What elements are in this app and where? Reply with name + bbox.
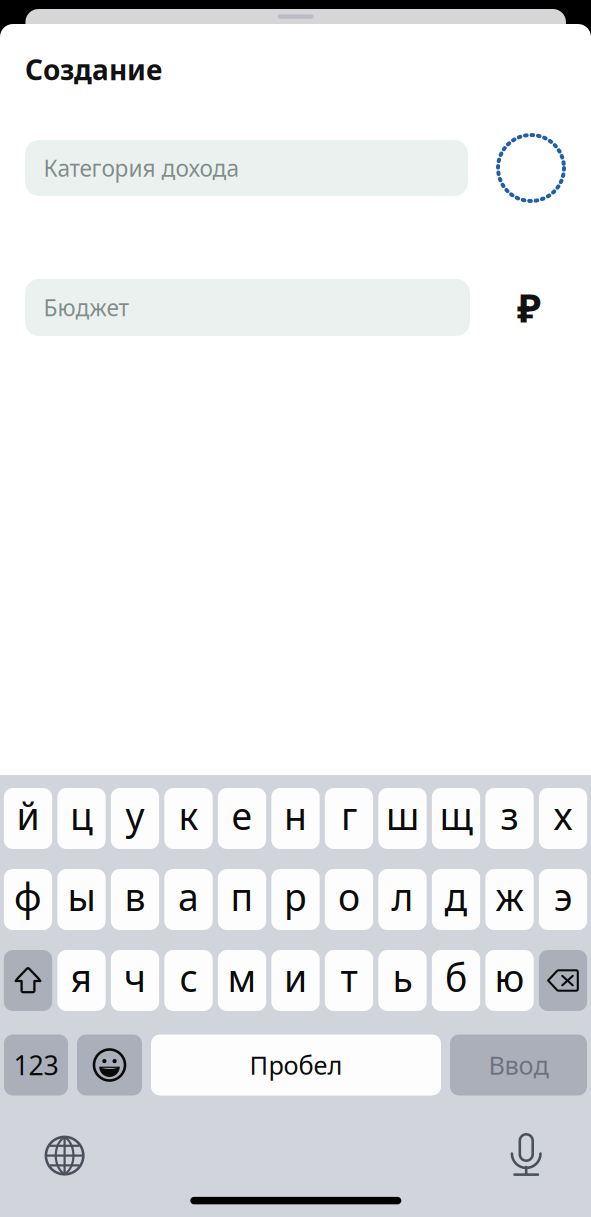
button[interactable]: Choose category colour [496, 133, 566, 203]
button[interactable]: б [432, 950, 480, 1011]
button[interactable]: ж [485, 869, 534, 930]
staticText: и [284, 953, 307, 1002]
button[interactable]: ь [378, 950, 427, 1011]
button[interactable]: Backspace [539, 950, 587, 1011]
staticText: у [125, 791, 144, 840]
button[interactable]: а [164, 869, 213, 930]
button[interactable]: с [164, 950, 213, 1011]
staticText: ю [494, 953, 524, 1002]
staticText: р [284, 872, 307, 921]
button[interactable]: к [164, 788, 213, 849]
button[interactable]: ч [111, 950, 159, 1011]
staticText: 123 [13, 1047, 58, 1083]
button[interactable]: х [539, 788, 587, 849]
button[interactable]: у [111, 788, 159, 849]
button[interactable]: м [218, 950, 266, 1011]
button[interactable]: ц [57, 788, 106, 849]
staticText: Бюджет [43, 292, 129, 322]
staticText: м [227, 953, 256, 1002]
staticText: з [500, 791, 518, 840]
button[interactable]: Shift [4, 950, 52, 1011]
button[interactable]: я [57, 950, 106, 1011]
staticText: ж [495, 872, 523, 921]
button[interactable]: е [218, 788, 266, 849]
button[interactable]: т [325, 950, 373, 1011]
button[interactable]: ы [57, 869, 106, 930]
staticText: л [391, 872, 413, 921]
staticText: г [341, 791, 357, 840]
button[interactable]: Пробел [151, 1034, 441, 1095]
button[interactable]: г [325, 788, 373, 849]
button[interactable]: Ввод [450, 1034, 587, 1095]
staticText: й [16, 791, 39, 840]
staticText: Категория дохода [43, 153, 239, 183]
button[interactable]: Emoji [77, 1034, 142, 1095]
staticText: я [70, 953, 92, 1002]
button[interactable]: Категория дохода [25, 140, 468, 196]
button[interactable]: ш [378, 788, 427, 849]
button[interactable]: в [111, 869, 159, 930]
button[interactable]: н [271, 788, 320, 849]
staticText: ₽ [517, 280, 541, 333]
button[interactable]: р [271, 869, 320, 930]
staticText: Пробел [249, 1048, 342, 1082]
button[interactable]: щ [432, 788, 480, 849]
staticText: е [231, 791, 252, 840]
staticText: п [230, 872, 253, 921]
staticText: д [444, 872, 467, 921]
button[interactable]: з [485, 788, 534, 849]
staticText: э [554, 872, 572, 921]
staticText: о [338, 872, 360, 921]
button[interactable]: л [378, 869, 427, 930]
button[interactable]: э [539, 869, 587, 930]
staticText: к [178, 791, 198, 840]
staticText: в [124, 872, 145, 921]
staticText: ч [124, 953, 146, 1002]
button[interactable]: о [325, 869, 373, 930]
staticText: т [340, 953, 357, 1002]
staticText: ь [392, 953, 412, 1002]
staticText: б [445, 953, 467, 1002]
button[interactable]: 123 [4, 1034, 68, 1095]
button[interactable]: Dictate [512, 1133, 540, 1176]
button[interactable]: Бюджет [25, 279, 470, 336]
staticText: н [284, 791, 307, 840]
button[interactable]: п [218, 869, 266, 930]
staticText: ц [70, 791, 93, 840]
staticText: Ввод [488, 1048, 548, 1082]
button[interactable]: й [4, 788, 52, 849]
button[interactable]: Switch keyboard language [45, 1136, 85, 1176]
staticText: ф [14, 872, 42, 921]
staticText: ш [386, 791, 419, 840]
staticText: ы [67, 872, 95, 921]
button[interactable]: д [432, 869, 480, 930]
staticText: с [179, 953, 197, 1002]
button[interactable]: и [271, 950, 320, 1011]
staticText: а [178, 872, 199, 921]
staticText: щ [439, 791, 472, 840]
staticText: Создание [25, 51, 162, 88]
staticText: х [553, 791, 572, 840]
button[interactable]: ю [485, 950, 534, 1011]
button[interactable]: ф [4, 869, 52, 930]
